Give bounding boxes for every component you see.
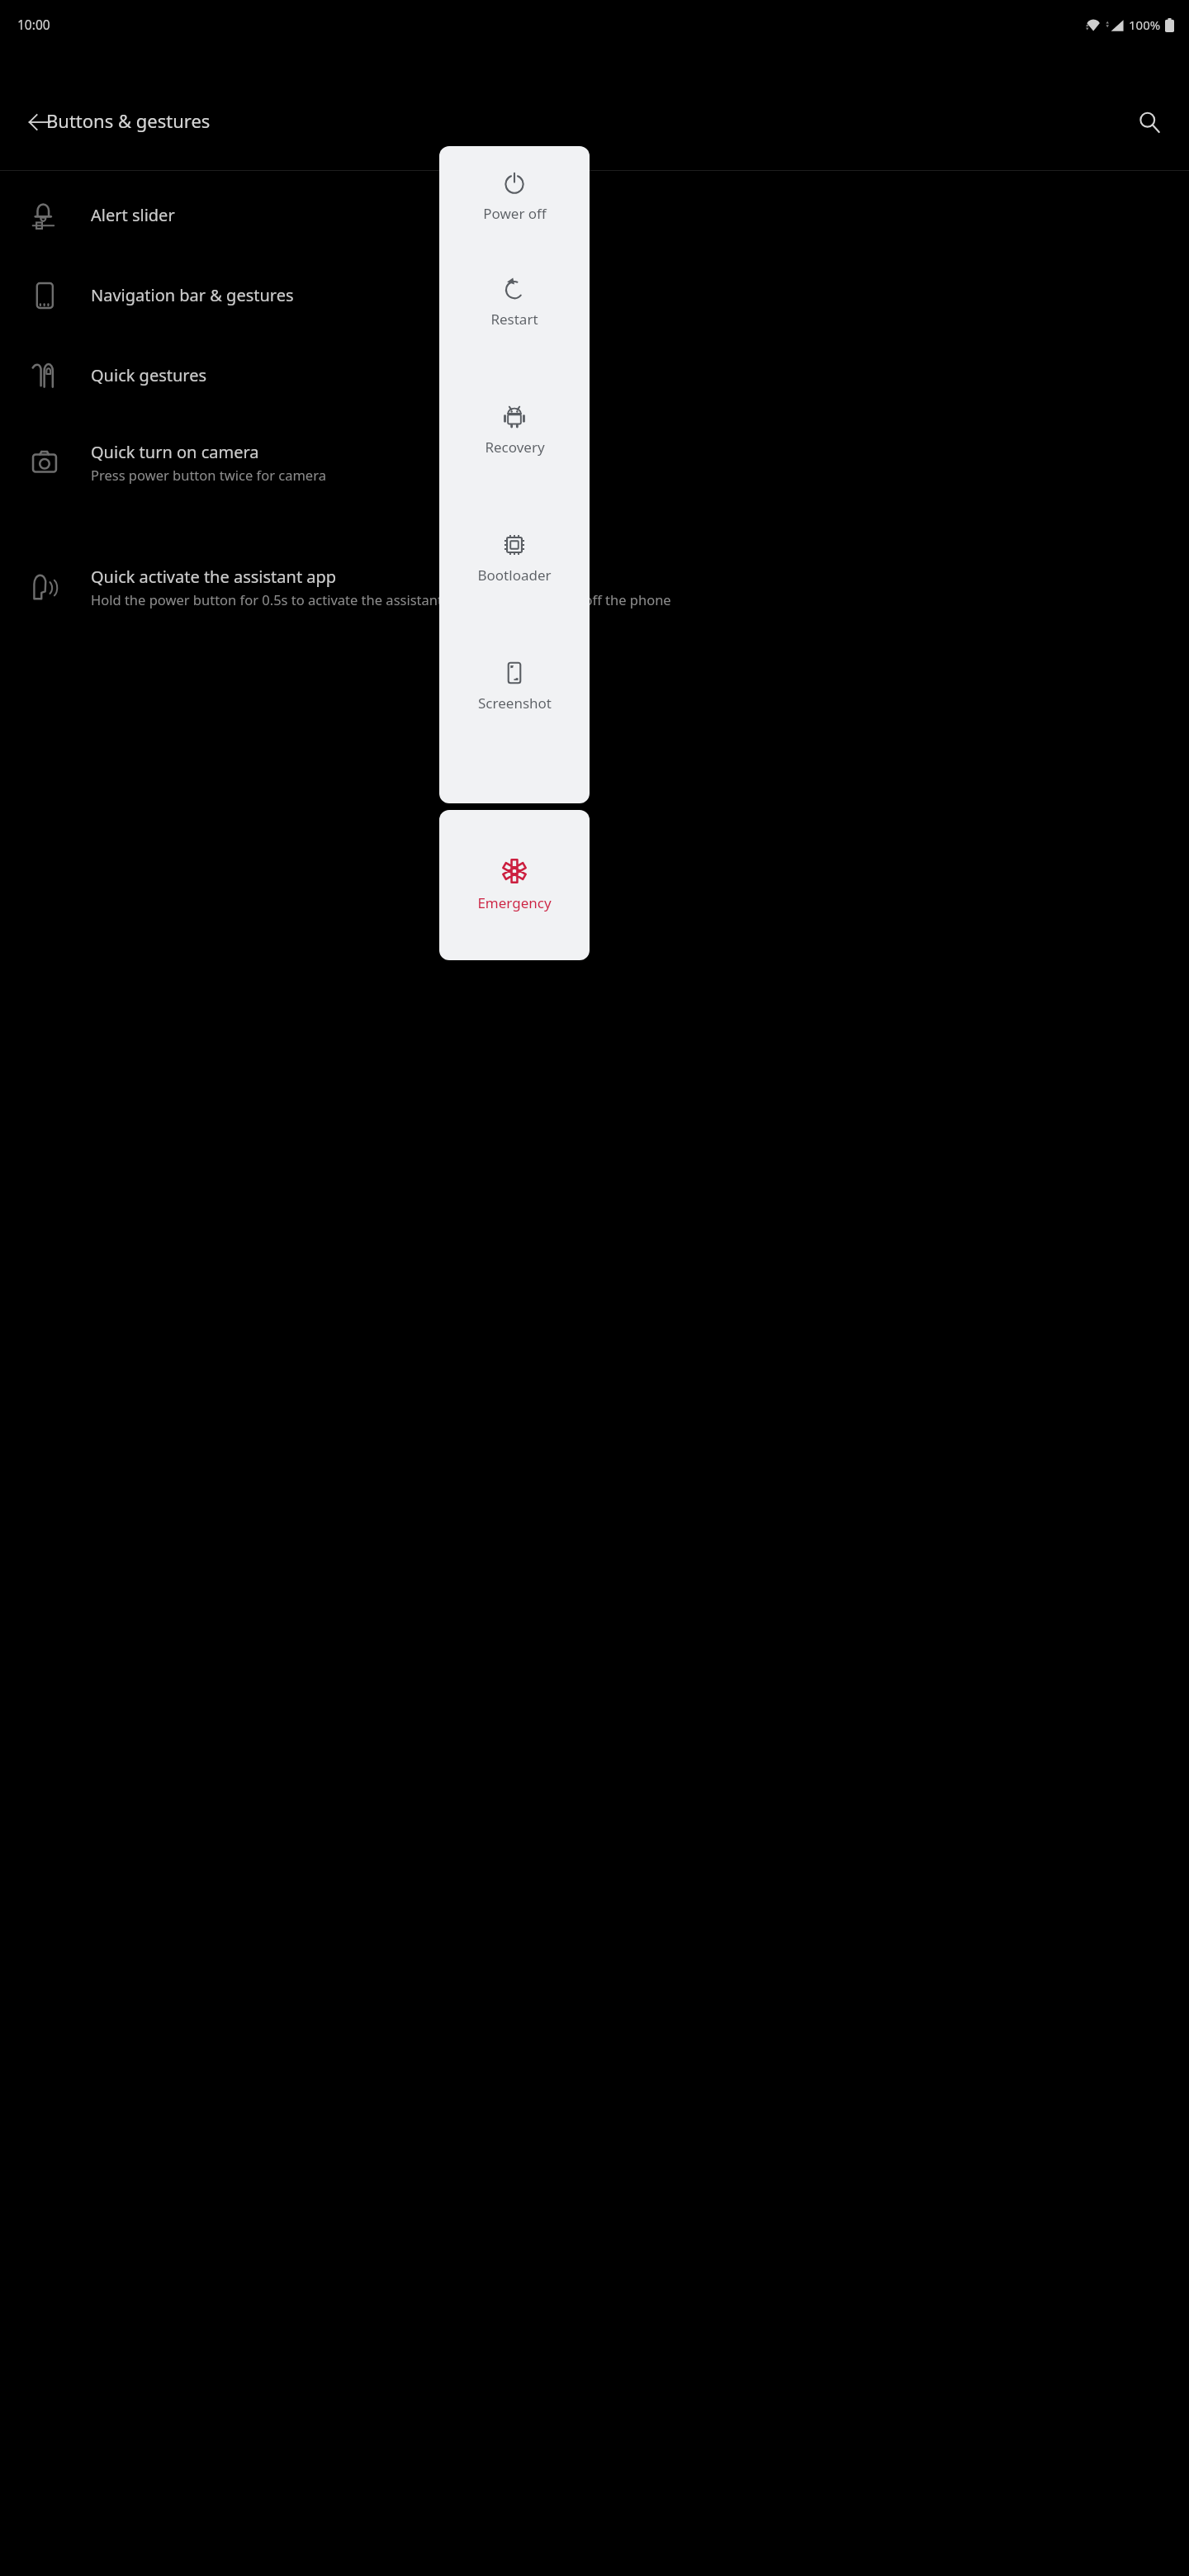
button[interactable]: Navigation bar & gestures: [0, 255, 1189, 335]
staticText: Quick activate the assistant app: [91, 566, 337, 588]
button[interactable]: Bootloader: [439, 495, 590, 623]
button[interactable]: Quick gestures: [0, 335, 1189, 415]
staticText: Alert slider: [91, 204, 175, 226]
staticText: Recovery: [485, 438, 545, 457]
staticText: Power off: [483, 204, 547, 223]
staticText: Hold the power button for 0.5s to activa…: [91, 590, 671, 608]
staticText: Press power button twice for camera: [91, 466, 326, 484]
staticText: Buttons & gestures: [46, 108, 211, 133]
staticText: 100%: [1129, 17, 1161, 33]
button[interactable]: Quick turn on camera: [0, 415, 1189, 509]
staticText: Screenshot: [478, 694, 552, 713]
staticText: Bootloader: [477, 566, 552, 585]
button[interactable]: Search: [1120, 92, 1179, 152]
staticText: Restart: [490, 310, 538, 329]
staticText: Quick turn on camera: [91, 441, 259, 463]
button[interactable]: Screenshot: [439, 623, 590, 751]
staticText: Emergency: [477, 893, 552, 912]
staticText: Quick gestures: [91, 364, 207, 386]
button[interactable]: Emergency: [439, 810, 590, 960]
button[interactable]: Power off: [439, 146, 590, 239]
button[interactable]: Recovery: [439, 367, 590, 495]
staticText: 10:00: [17, 16, 50, 33]
button[interactable]: Alert slider: [0, 175, 1189, 255]
button[interactable]: Back: [10, 92, 69, 152]
staticText: Navigation bar & gestures: [91, 284, 294, 306]
button[interactable]: Restart: [439, 239, 590, 367]
button[interactable]: Quick activate the assistant app: [0, 509, 1189, 665]
